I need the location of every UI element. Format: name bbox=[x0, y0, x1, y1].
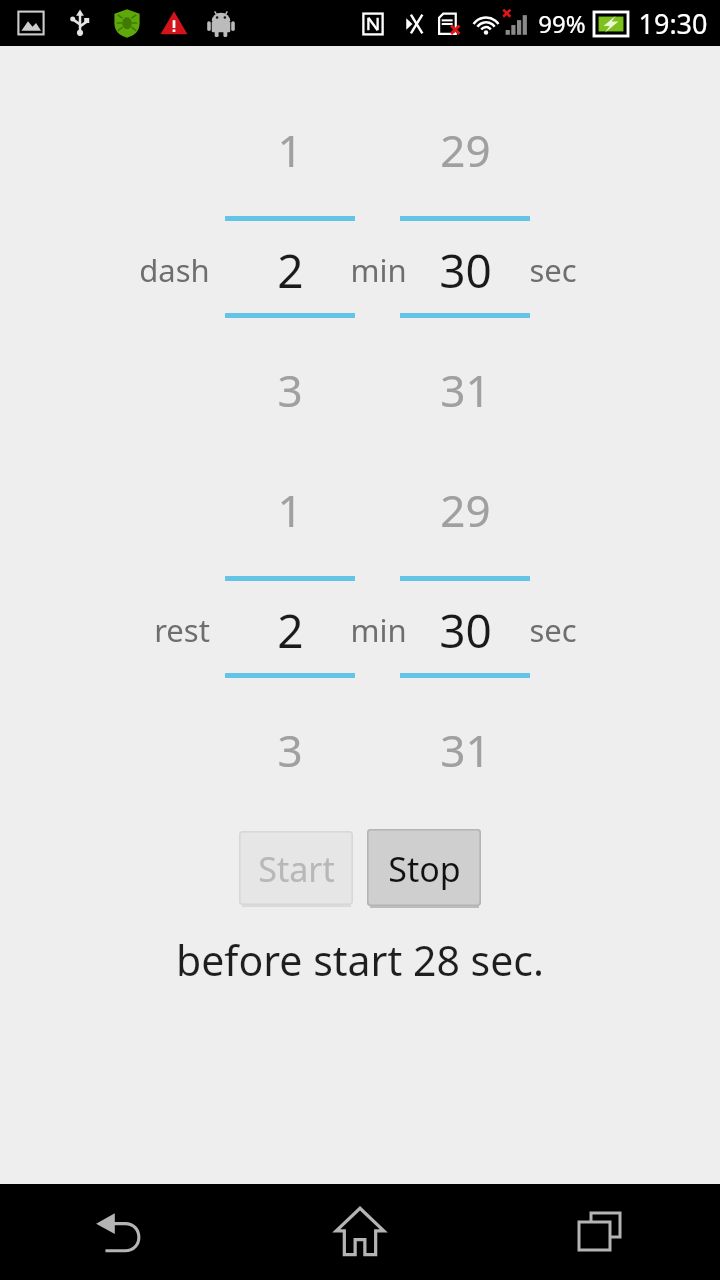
staticText: 29 bbox=[440, 480, 491, 540]
staticText: before start 28 sec. bbox=[176, 932, 544, 986]
staticText: 2 bbox=[277, 239, 304, 302]
button[interactable]: Recent apps bbox=[480, 1184, 720, 1280]
staticText: 31 bbox=[440, 720, 491, 780]
staticText: 3 bbox=[277, 360, 303, 420]
staticText: rest bbox=[154, 609, 210, 651]
staticText: 30 bbox=[439, 599, 492, 662]
button[interactable]: dash seconds bbox=[390, 90, 540, 390]
staticText: 19:30 bbox=[638, 5, 708, 42]
staticText: dash bbox=[139, 249, 210, 291]
staticText: Stop bbox=[388, 846, 461, 892]
staticText: 99% bbox=[538, 7, 586, 40]
staticText: 29 bbox=[440, 120, 491, 180]
staticText: sec bbox=[529, 609, 577, 651]
button[interactable]: rest seconds bbox=[390, 450, 540, 750]
staticText: min bbox=[350, 609, 407, 651]
staticText: 30 bbox=[439, 239, 492, 302]
button[interactable]: Home bbox=[240, 1184, 480, 1280]
staticText: sec bbox=[529, 249, 577, 291]
staticText: 2 bbox=[277, 599, 304, 662]
button[interactable]: Back bbox=[0, 1184, 240, 1280]
button[interactable]: Start bbox=[239, 831, 353, 907]
staticText: 1 bbox=[277, 480, 303, 540]
staticText: Start bbox=[258, 846, 335, 892]
button[interactable]: dash minutes bbox=[215, 90, 365, 390]
button[interactable]: rest minutes bbox=[215, 450, 365, 750]
staticText: 3 bbox=[277, 720, 303, 780]
staticText: 31 bbox=[440, 360, 491, 420]
staticText: min bbox=[350, 249, 407, 291]
button[interactable]: Stop bbox=[367, 829, 481, 908]
staticText: 1 bbox=[277, 120, 303, 180]
